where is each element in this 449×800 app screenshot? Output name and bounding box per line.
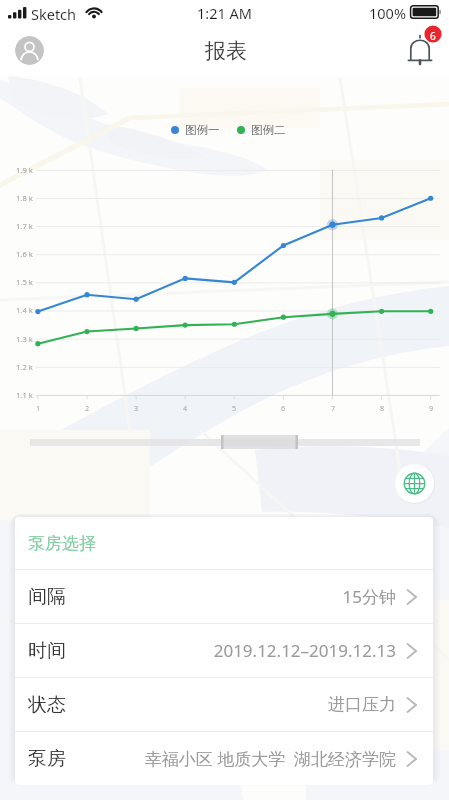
button[interactable]: Profile: [15, 36, 44, 65]
staticText: 泵房选择: [28, 533, 96, 554]
staticText: 3: [134, 403, 139, 413]
button[interactable]: 泵房选择: [15, 517, 433, 569]
staticText: 2019.12.12–2019.12.13: [70, 639, 396, 662]
staticText: 报表: [205, 38, 247, 64]
staticText: 1.8 k: [16, 193, 33, 203]
staticText: 1.7 k: [16, 221, 33, 231]
staticText: 泵房: [28, 747, 66, 771]
staticText: 图例一: [185, 123, 220, 137]
staticText: 1:21 AM: [197, 3, 252, 23]
button[interactable]: 间隔: [15, 570, 433, 623]
staticText: 1.6 k: [16, 249, 33, 259]
staticText: 15分钟: [70, 585, 396, 608]
button[interactable]: 泵房: [15, 732, 433, 785]
staticText: 9: [429, 403, 434, 413]
staticText: 8: [380, 403, 385, 413]
button[interactable]: Map layers: [395, 464, 434, 503]
staticText: 时间: [28, 639, 66, 663]
staticText: 进口压力: [70, 694, 396, 715]
staticText: 4: [183, 403, 188, 413]
button[interactable]: Notifications: [400, 26, 444, 74]
staticText: 状态: [28, 693, 66, 717]
button[interactable]: 时间: [15, 624, 433, 677]
staticText: 1.4 k: [16, 305, 33, 315]
staticText: Sketch: [31, 4, 77, 24]
staticText: 间隔: [28, 585, 66, 609]
staticText: 6: [430, 29, 436, 43]
staticText: 5: [232, 403, 237, 413]
staticText: 1.5 k: [16, 277, 33, 287]
staticText: 100%: [369, 3, 406, 23]
staticText: 1.1 k: [16, 390, 33, 400]
button[interactable]: 状态: [15, 678, 433, 731]
staticText: 幸福小区 地质大学 湖北经济学院: [70, 747, 396, 770]
staticText: 2: [85, 403, 90, 413]
staticText: 1.2 k: [16, 362, 33, 372]
staticText: 1.9 k: [16, 165, 33, 175]
staticText: 7: [331, 403, 336, 413]
staticText: 6: [281, 403, 286, 413]
staticText: 1.3 k: [16, 334, 33, 344]
staticText: 1: [36, 403, 41, 413]
staticText: 图例二: [251, 123, 286, 137]
